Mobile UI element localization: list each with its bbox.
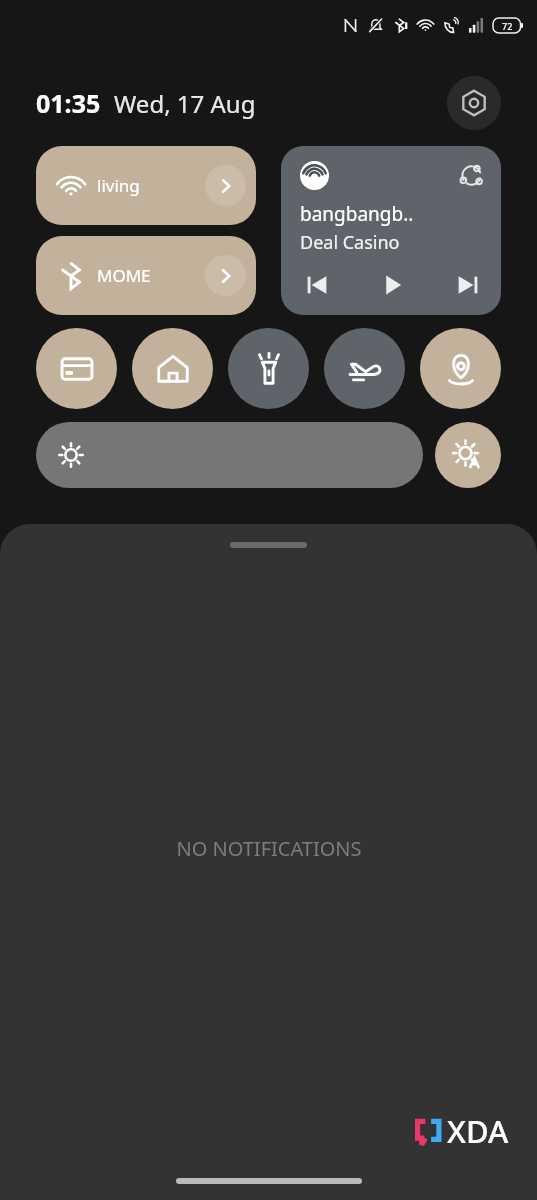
button[interactable]: Airplane mode	[324, 328, 405, 409]
button[interactable]: Flashlight	[228, 328, 309, 409]
button[interactable]: living ro..	[36, 146, 256, 225]
button[interactable]: Auto brightness	[435, 422, 501, 488]
button[interactable]: Wallet	[36, 328, 117, 409]
button[interactable]: Settings	[447, 76, 501, 130]
staticText: 01:35	[36, 86, 101, 120]
button[interactable]: Brightness	[36, 422, 423, 488]
staticText: NO NOTIFICATIONS	[176, 835, 362, 862]
button[interactable]: Cast output	[281, 146, 501, 315]
button[interactable]: Cast output	[458, 162, 485, 189]
staticText: MOMEN..	[97, 264, 151, 287]
button[interactable]: Previous	[300, 268, 334, 302]
button[interactable]: Location	[420, 328, 501, 409]
button[interactable]: Next	[451, 268, 485, 302]
staticText: 72	[502, 20, 513, 32]
staticText: XDA	[447, 1110, 509, 1152]
button[interactable]: Home	[132, 328, 213, 409]
staticText: bangbangb..	[300, 201, 414, 227]
staticText: Deal Casino	[300, 230, 400, 255]
staticText: Wed, 17 Aug	[114, 87, 256, 120]
button[interactable]: MOMEN..	[36, 236, 256, 315]
button[interactable]: Play	[376, 268, 410, 302]
staticText: living ro..	[97, 174, 151, 197]
